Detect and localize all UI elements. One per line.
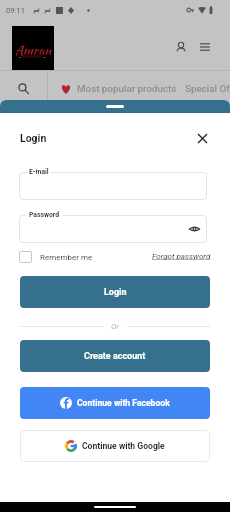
button[interactable]: Special Of <box>185 83 230 94</box>
button[interactable]: Amran Fashion home <box>12 26 54 70</box>
button[interactable]: Menu <box>196 38 214 56</box>
button[interactable]: Remember me <box>40 253 93 262</box>
button[interactable]: Remember me <box>19 251 32 263</box>
staticText: Or <box>111 322 119 331</box>
button[interactable]: Close <box>192 128 212 148</box>
button[interactable]: Most popular products <box>77 83 177 94</box>
staticText: Login <box>104 287 127 298</box>
button[interactable]: Forgot password <box>152 252 211 261</box>
staticText: 09:11 <box>6 6 25 15</box>
button[interactable]: Login <box>20 276 210 308</box>
button[interactable]: Continue with Facebook <box>20 387 210 419</box>
staticText: E-mail <box>29 168 49 176</box>
button[interactable]: Show password <box>186 221 202 237</box>
staticText: Continue with Google <box>82 441 165 451</box>
button[interactable]: Account <box>172 38 190 56</box>
button[interactable]: Search <box>0 71 47 106</box>
button[interactable]: E-mail <box>19 172 207 200</box>
staticText: Create account <box>84 351 146 362</box>
staticText: Login <box>20 132 47 144</box>
button[interactable]: Continue with Google <box>20 430 210 462</box>
staticText: Continue with Facebook <box>77 398 170 408</box>
staticText: Amran <box>15 41 52 60</box>
staticText: FASHION <box>23 55 42 59</box>
button[interactable]: Password <box>19 215 207 243</box>
button[interactable]: Create account <box>20 340 210 372</box>
staticText: Password <box>29 211 60 219</box>
